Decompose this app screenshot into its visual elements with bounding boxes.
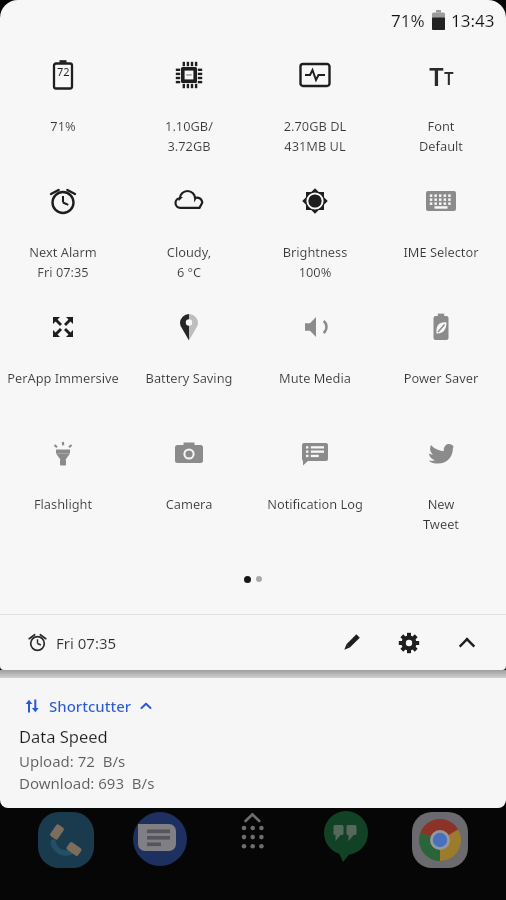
button[interactable]: [412, 812, 468, 868]
staticText: New Tweet: [378, 495, 504, 533]
staticText: Shortcutter: [49, 696, 132, 716]
staticText: 1.10GB/ 3.72GB: [126, 117, 252, 155]
staticText: Upload: 72 B/s: [19, 751, 126, 771]
staticText: 72: [57, 64, 70, 79]
button[interactable]: Shortcutter: [0, 678, 506, 808]
staticText: Fri 07:35: [56, 633, 117, 653]
staticText: T: [444, 67, 454, 90]
button[interactable]: Power Saver: [378, 292, 504, 418]
staticText: T: [429, 58, 444, 93]
button[interactable]: [380, 615, 438, 670]
staticText: Battery Saving: [126, 369, 252, 386]
button[interactable]: Next Alarm Fri 07:35: [0, 166, 126, 292]
staticText: Font Default: [378, 117, 504, 155]
button[interactable]: 2.70GB DL 431MB UL: [252, 40, 378, 166]
staticText: Download: 693 B/s: [19, 773, 155, 793]
button[interactable]: T: [378, 40, 504, 166]
button[interactable]: [438, 615, 496, 670]
staticText: Notification Log: [252, 495, 378, 512]
staticText: Power Saver: [378, 369, 504, 386]
button[interactable]: PerApp Immersive: [0, 292, 126, 418]
button[interactable]: Shortcutter: [24, 696, 152, 716]
button[interactable]: New Tweet: [378, 418, 504, 544]
button[interactable]: [133, 812, 187, 866]
staticText: PerApp Immersive: [0, 369, 126, 386]
staticText: 71%: [0, 117, 126, 134]
staticText: Flashlight: [0, 495, 126, 512]
button[interactable]: Flashlight: [0, 418, 126, 544]
staticText: Cloudy, 6 °C: [126, 243, 252, 281]
button[interactable]: Brightness 100%: [252, 166, 378, 292]
staticText: 13:43: [451, 9, 495, 32]
staticText: Data Speed: [19, 725, 108, 747]
button[interactable]: [321, 812, 373, 864]
staticText: 2.70GB DL 431MB UL: [252, 117, 378, 155]
button[interactable]: Notification Log: [252, 418, 378, 544]
staticText: Next Alarm Fri 07:35: [0, 243, 126, 281]
staticText: Camera: [126, 495, 252, 512]
button[interactable]: IME Selector: [378, 166, 504, 292]
staticText: IME Selector: [378, 243, 504, 260]
staticText: Mute Media: [252, 369, 378, 386]
button[interactable]: Battery Saving: [126, 292, 252, 418]
button[interactable]: Camera: [126, 418, 252, 544]
button[interactable]: Cloudy, 6 °C: [126, 166, 252, 292]
button[interactable]: 72: [0, 40, 126, 166]
button[interactable]: [38, 812, 94, 868]
button[interactable]: Mute Media: [252, 292, 378, 418]
button[interactable]: [322, 615, 380, 670]
staticText: Brightness 100%: [252, 243, 378, 281]
button[interactable]: 1.10GB/ 3.72GB: [126, 40, 252, 166]
staticText: 71%: [391, 9, 425, 32]
button[interactable]: [227, 812, 279, 864]
